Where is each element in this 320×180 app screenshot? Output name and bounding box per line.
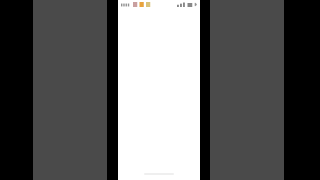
- button[interactable]: Home: [118, 170, 200, 180]
